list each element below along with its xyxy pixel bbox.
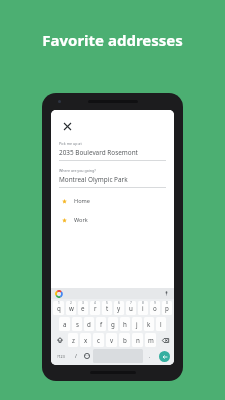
staticText: s [76, 320, 79, 328]
button[interactable]: Close [59, 118, 75, 134]
staticText: p [165, 304, 169, 312]
staticText: Work [74, 216, 88, 224]
staticText: 7 [130, 301, 132, 305]
staticText: y [117, 304, 121, 312]
button[interactable]: g [108, 317, 118, 331]
button[interactable]: 9 [150, 301, 160, 315]
button[interactable]: z [68, 333, 78, 347]
button[interactable]: Enter [156, 349, 172, 363]
staticText: ?123 [57, 354, 65, 359]
staticText: q [57, 304, 61, 312]
button[interactable]: j [132, 317, 142, 331]
button[interactable]: v [106, 333, 117, 347]
button[interactable]: k [144, 317, 154, 331]
staticText: j [136, 320, 138, 328]
staticText: 8 [142, 301, 144, 305]
staticText: e [81, 304, 85, 312]
staticText: d [87, 320, 91, 328]
button[interactable]: 7 [126, 301, 136, 315]
staticText: w [69, 304, 74, 312]
staticText: i [142, 304, 144, 312]
staticText: b [123, 336, 127, 344]
staticText: k [147, 320, 151, 328]
staticText: t [106, 304, 109, 312]
staticText: a [63, 320, 67, 328]
staticText: 1 [58, 301, 60, 305]
staticText: 3 [82, 301, 84, 305]
button[interactable]: 2 [66, 301, 76, 315]
staticText: 0 [166, 301, 168, 305]
button[interactable]: b [119, 333, 130, 347]
button[interactable]: Voice input [163, 290, 170, 297]
staticText: l [160, 320, 162, 328]
staticText: r [94, 304, 97, 312]
button[interactable]: x [80, 333, 91, 347]
staticText: z [72, 336, 75, 344]
staticText: 4 [94, 301, 96, 305]
staticText: c [97, 336, 100, 344]
staticText: 2035 Boulevard Rosemont [59, 148, 138, 157]
staticText: g [111, 320, 115, 328]
button[interactable]: 0 [162, 301, 172, 315]
staticText: 9 [154, 301, 156, 305]
button[interactable]: f [96, 317, 106, 331]
button[interactable]: 4 [90, 301, 100, 315]
staticText: / [75, 353, 77, 360]
button[interactable]: Shift [53, 333, 66, 347]
button[interactable]: 6 [114, 301, 124, 315]
button[interactable]: / [71, 349, 80, 363]
staticText: . [149, 353, 151, 360]
staticText: u [129, 304, 133, 312]
staticText: Pick me up at [59, 141, 82, 146]
button[interactable]: Work [59, 216, 166, 224]
button[interactable]: h [120, 317, 130, 331]
button[interactable]: Emoji [82, 349, 91, 363]
staticText: f [100, 320, 103, 328]
button[interactable]: n [132, 333, 143, 347]
staticText: n [136, 336, 140, 344]
staticText: Favorite addresses [42, 30, 183, 50]
staticText: Where are you going? [59, 168, 96, 173]
button[interactable]: c [93, 333, 104, 347]
staticText: 6 [118, 301, 120, 305]
button[interactable]: 1 [53, 301, 64, 315]
button[interactable]: Backspace [158, 333, 172, 347]
staticText: h [123, 320, 127, 328]
button[interactable]: 3 [78, 301, 88, 315]
staticText: x [84, 336, 88, 344]
button[interactable]: Google search [55, 290, 62, 297]
button[interactable]: Home [59, 197, 166, 205]
button[interactable]: . [145, 349, 154, 363]
staticText: Home [74, 197, 90, 205]
button[interactable]: l [156, 317, 166, 331]
button[interactable]: 5 [102, 301, 112, 315]
button[interactable]: 8 [138, 301, 148, 315]
staticText: v [110, 336, 114, 344]
button[interactable]: m [145, 333, 156, 347]
staticText: o [153, 304, 157, 312]
staticText: Montreal Olympic Park [59, 175, 128, 184]
staticText: m [148, 336, 154, 344]
button[interactable]: s [72, 317, 82, 331]
staticText: 5 [106, 301, 108, 305]
staticText: 2 [70, 301, 72, 305]
button[interactable]: ?123 [53, 349, 69, 363]
button[interactable]: a [59, 317, 70, 331]
button[interactable]: d [84, 317, 94, 331]
